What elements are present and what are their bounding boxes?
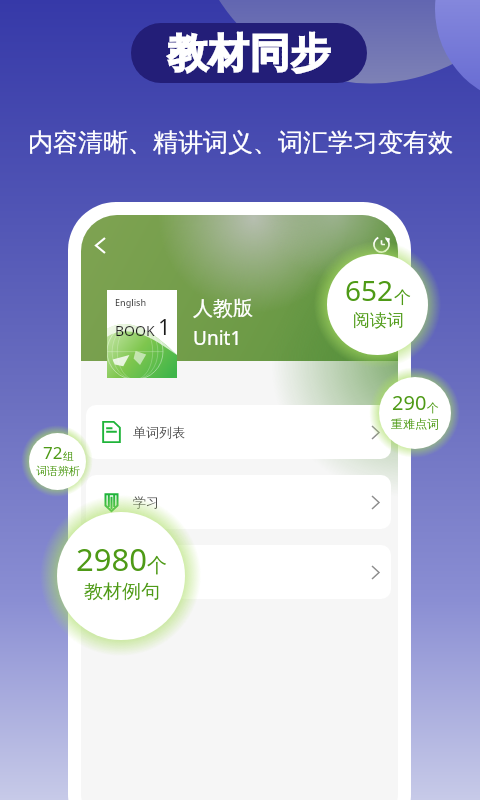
staticText: 1 [158, 311, 171, 341]
button[interactable]: Back [84, 229, 116, 261]
staticText: 290 [392, 389, 427, 416]
staticText: 内容清晰、精讲词义、词汇学习变有效 [28, 127, 453, 158]
staticText: 个 [427, 400, 439, 415]
staticText: 教材同步 [167, 28, 331, 78]
button[interactable]: 单词列表 [86, 405, 391, 459]
button[interactable] [86, 545, 391, 599]
button[interactable]: 2980 [57, 512, 185, 640]
button[interactable]: History [365, 228, 397, 260]
staticText: Unit1 [193, 325, 242, 351]
staticText: English [115, 296, 147, 308]
button[interactable]: 652 [327, 254, 428, 355]
staticText: 652 [345, 271, 394, 309]
staticText: 72 [43, 441, 63, 464]
button[interactable]: 72 [29, 433, 86, 490]
staticText: 2980 [76, 538, 147, 580]
button[interactable]: 学习 [86, 475, 391, 529]
staticText: 组 [63, 449, 74, 463]
staticText: 学习 [133, 494, 159, 510]
staticText: 词语辨析 [36, 464, 80, 478]
staticText: 单词列表 [133, 424, 185, 440]
staticText: BOOK [115, 321, 155, 340]
button[interactable]: 290 [379, 377, 451, 449]
staticText: 阅读词 [353, 310, 404, 331]
staticText: 个 [394, 287, 411, 308]
button[interactable]: 教材同步 [131, 23, 367, 83]
staticText: 教材例句 [84, 580, 160, 604]
staticText: 个 [147, 553, 167, 578]
staticText: 人教版 [193, 296, 253, 321]
staticText: 重难点词 [391, 416, 439, 431]
